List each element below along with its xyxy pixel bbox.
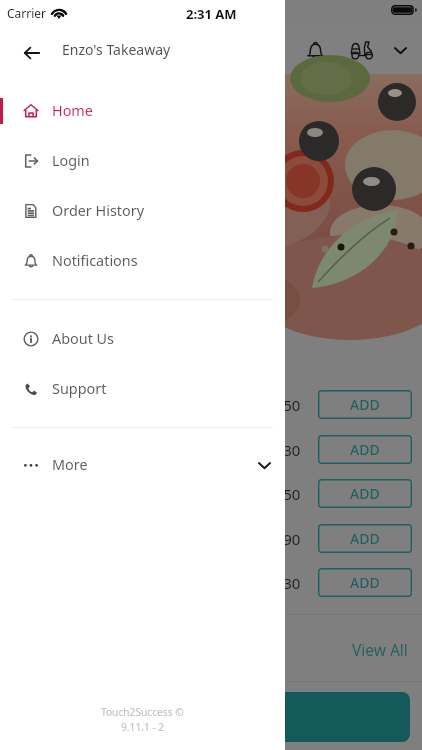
staticText: Carrier [7, 5, 47, 21]
staticText: Touch2Success © [101, 705, 184, 719]
button[interactable]: Expand [383, 33, 417, 67]
staticText: Notifications [52, 251, 138, 271]
button[interactable]: Back [8, 29, 56, 77]
button[interactable]: ADD [318, 479, 412, 508]
staticText: ADD [350, 440, 380, 459]
staticText: ADD [350, 395, 380, 414]
button[interactable]: ADD [318, 390, 412, 419]
button[interactable]: View All [348, 633, 412, 666]
button[interactable]: ADD [318, 435, 412, 464]
button[interactable]: Support [0, 364, 285, 414]
button[interactable]: Notifications [295, 30, 335, 70]
button[interactable]: Login [0, 136, 285, 186]
button[interactable]: Notifications [0, 236, 285, 286]
staticText: Login [52, 151, 90, 171]
button[interactable]: About Us [0, 314, 285, 364]
staticText: More [52, 455, 88, 475]
button[interactable]: ADD [318, 568, 412, 597]
staticText: Enzo's Takeaway [62, 40, 171, 59]
staticText: £8.50 [262, 395, 301, 415]
button[interactable]: ADD [318, 524, 412, 553]
staticText: About Us [52, 329, 114, 349]
staticText: £6.30 [262, 440, 301, 460]
staticText: Home [52, 101, 93, 121]
button[interactable] [12, 692, 410, 742]
staticText: 9.11.1 - 2 [121, 720, 165, 734]
staticText: Support [52, 379, 107, 399]
button[interactable]: More [0, 440, 285, 490]
staticText: £4.30 [262, 573, 301, 593]
staticText: Order History [52, 201, 144, 221]
staticText: View All [352, 639, 408, 660]
staticText: ADD [350, 529, 380, 548]
staticText: ADD [350, 573, 380, 592]
button[interactable]: Delivery options [341, 30, 381, 70]
staticText: £8.50 [262, 484, 301, 504]
staticText: 2:31 AM [186, 5, 237, 23]
staticText: £7.90 [262, 529, 301, 549]
button[interactable]: Home [0, 86, 285, 136]
button[interactable]: Order History [0, 186, 285, 236]
staticText: ADD [350, 484, 380, 503]
button[interactable]: Expand more [247, 448, 281, 482]
